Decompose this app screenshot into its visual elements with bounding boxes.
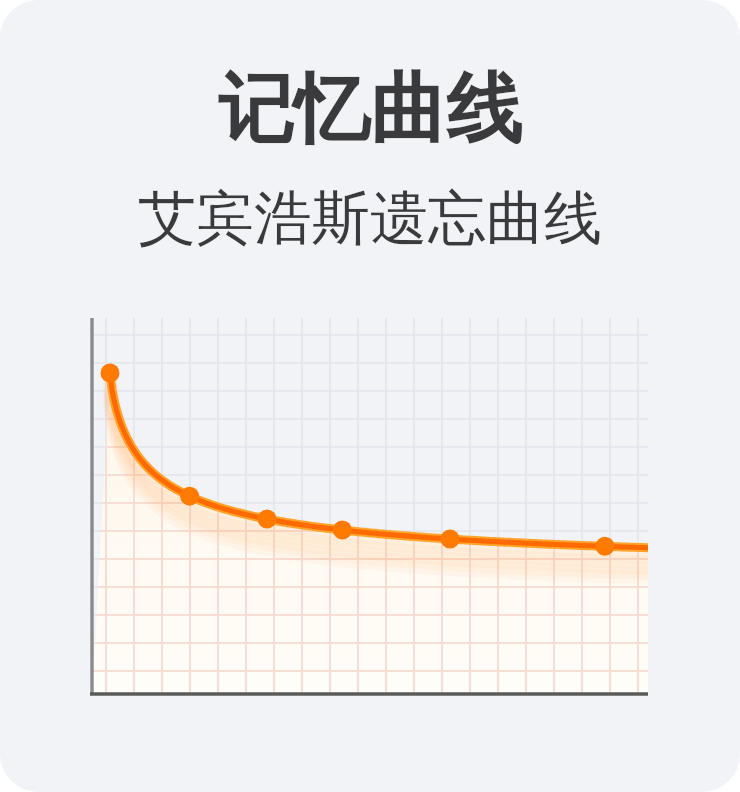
button[interactable]: 艾宾浩斯遗忘曲线 bbox=[0, 182, 740, 255]
button[interactable]: 记忆曲线 bbox=[0, 62, 740, 158]
button[interactable]: 艾宾浩斯遗忘曲线图表 bbox=[0, 299, 740, 699]
